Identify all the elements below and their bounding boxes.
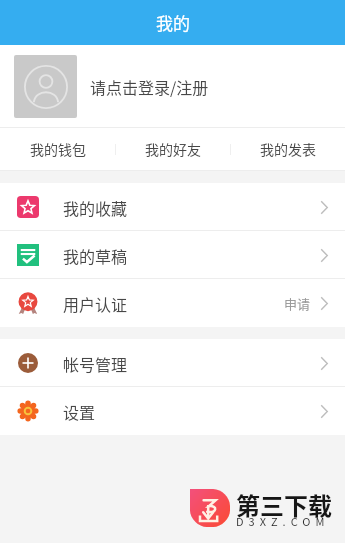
staticText: D3XZ.COM bbox=[236, 513, 330, 529]
staticText: 我的好友 bbox=[145, 139, 201, 159]
staticText: 第三下载 bbox=[236, 487, 332, 522]
button[interactable]: 我的收藏 bbox=[0, 183, 345, 231]
staticText: 设置 bbox=[63, 400, 96, 423]
button[interactable]: 帐号管理 bbox=[0, 339, 345, 387]
button[interactable]: 设置 bbox=[0, 387, 345, 435]
button[interactable]: 用户认证 bbox=[0, 279, 345, 327]
button[interactable]: 我的好友 bbox=[116, 128, 230, 170]
staticText: 申请 bbox=[284, 294, 311, 313]
staticText: 帐号管理 bbox=[63, 352, 128, 375]
button[interactable]: 我的草稿 bbox=[0, 231, 345, 279]
staticText: 我的草稿 bbox=[63, 244, 128, 267]
staticText: 我的 bbox=[156, 10, 190, 35]
staticText: 我的发表 bbox=[260, 139, 316, 159]
button[interactable]: 我的钱包 bbox=[0, 128, 115, 170]
button[interactable]: 我的发表 bbox=[231, 128, 345, 170]
staticText: 请点击登录/注册 bbox=[90, 75, 209, 98]
staticText: 我的钱包 bbox=[30, 139, 86, 159]
staticText: 用户认证 bbox=[63, 292, 128, 315]
button[interactable]: 请点击登录/注册 bbox=[0, 45, 345, 127]
staticText: 我的收藏 bbox=[63, 196, 128, 219]
